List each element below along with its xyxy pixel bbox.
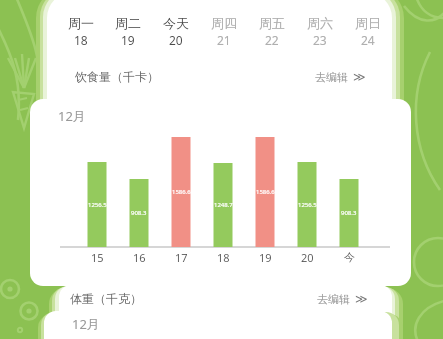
staticText: 1586.6 [256, 188, 275, 196]
staticText: ≫ [355, 292, 368, 306]
button[interactable]: 20 [287, 249, 327, 265]
staticText: 18 [74, 32, 88, 48]
staticText: 15 [91, 250, 104, 265]
staticText: 12月 [58, 107, 86, 125]
button[interactable]: 去编辑 [315, 70, 366, 84]
button[interactable]: 今 [329, 249, 369, 265]
staticText: 908.3 [341, 209, 357, 217]
staticText: 12月 [72, 315, 100, 333]
staticText: 周五 [259, 15, 285, 31]
staticText: 1256.5 [88, 201, 107, 209]
button[interactable]: 周一 [57, 15, 104, 48]
staticText: 今 [344, 250, 355, 264]
staticText: 19 [259, 250, 272, 265]
staticText: 周二 [115, 15, 141, 31]
staticText: 周六 [307, 15, 333, 31]
staticText: 去编辑 [317, 292, 350, 306]
staticText: 1256.5 [298, 201, 317, 209]
staticText: 体重（千克） [70, 291, 142, 306]
staticText: 19 [121, 32, 135, 48]
staticText: 周四 [211, 15, 237, 31]
button[interactable]: 今天 [152, 15, 200, 48]
button[interactable]: 16 [119, 249, 159, 265]
button[interactable]: 15 [77, 249, 117, 265]
staticText: 23 [313, 32, 327, 48]
button[interactable]: 去编辑 [317, 292, 368, 306]
button[interactable]: 18 [203, 249, 243, 265]
button[interactable]: 周二 [104, 15, 152, 48]
staticText: 1248.7 [214, 201, 233, 209]
staticText: 21 [217, 32, 231, 48]
staticText: 908.3 [131, 209, 147, 217]
button[interactable]: 周四 [200, 15, 248, 48]
staticText: 周一 [68, 15, 94, 31]
button[interactable]: 19 [245, 249, 285, 265]
staticText: 饮食量（千卡） [75, 69, 159, 84]
staticText: 20 [301, 250, 314, 265]
button[interactable]: 周六 [296, 15, 344, 48]
staticText: 16 [133, 250, 146, 265]
staticText: 去编辑 [315, 70, 348, 84]
staticText: 17 [175, 250, 188, 265]
button[interactable]: 周五 [248, 15, 296, 48]
button[interactable]: 周日 [344, 15, 392, 48]
staticText: 22 [265, 32, 279, 48]
staticText: 1586.6 [172, 188, 191, 196]
staticText: 周日 [355, 15, 381, 31]
button[interactable]: 17 [161, 249, 201, 265]
staticText: ≫ [353, 70, 366, 84]
staticText: 20 [169, 32, 183, 48]
staticText: 今天 [163, 15, 189, 31]
staticText: 24 [361, 32, 375, 48]
staticText: 18 [217, 250, 230, 265]
